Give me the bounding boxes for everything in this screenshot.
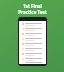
button[interactable]: Question 7	[21, 52, 44, 56]
button[interactable]: Question 9	[21, 62, 44, 63]
button[interactable]: Question 4	[21, 37, 44, 41]
button[interactable]: Question 8	[21, 57, 44, 61]
button[interactable]: Question 1	[21, 22, 44, 26]
button[interactable]: Question 5	[21, 42, 44, 46]
button[interactable]: Question 1	[19, 17, 46, 66]
button[interactable]: Question 6	[21, 47, 44, 51]
staticText: 1st Final	[23, 3, 42, 9]
button[interactable]: Question 2	[21, 27, 44, 31]
button[interactable]: Question 3	[21, 32, 44, 36]
staticText: Practice Test	[18, 9, 47, 15]
